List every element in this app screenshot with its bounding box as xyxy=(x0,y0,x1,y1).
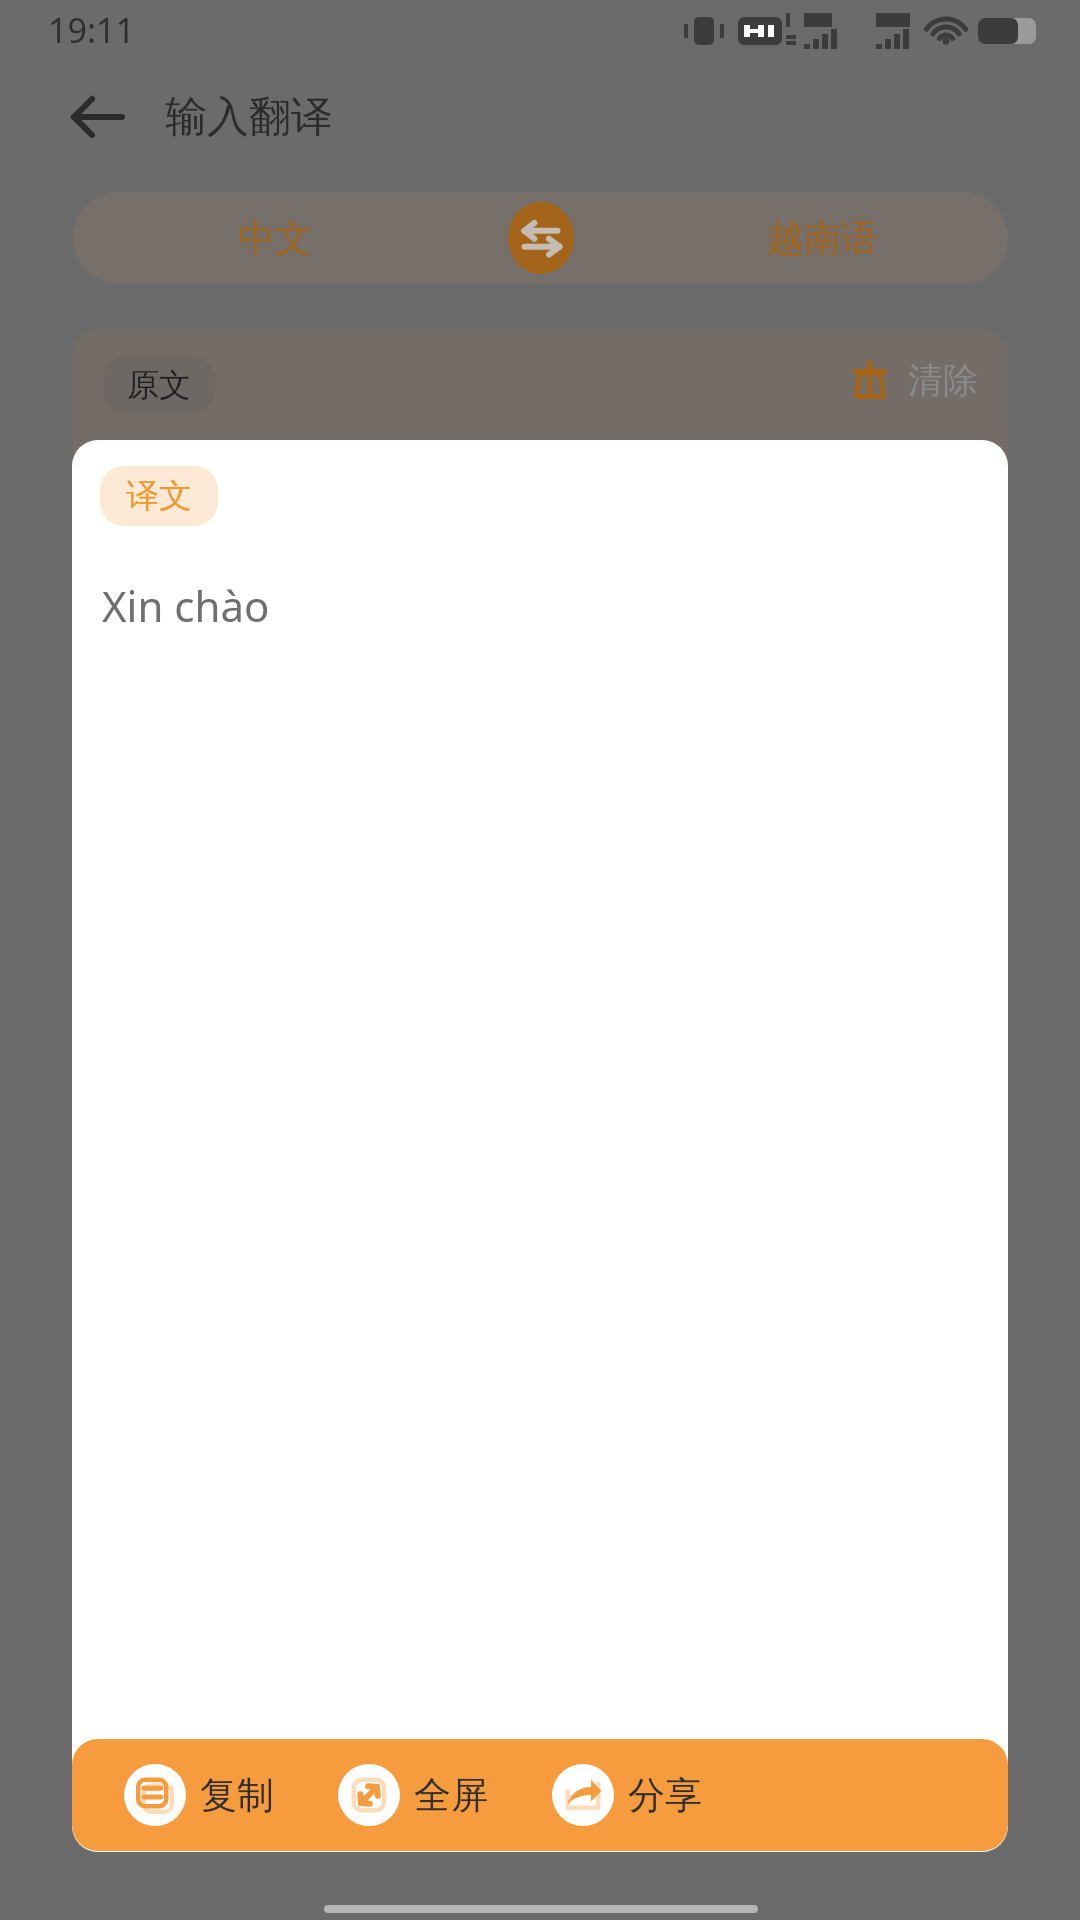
staticText: 中文 xyxy=(238,215,312,262)
staticText: 输入翻译 xyxy=(165,91,333,144)
button[interactable]: 全屏 xyxy=(332,1756,494,1834)
staticText: 分享 xyxy=(628,1772,702,1819)
button[interactable]: Back xyxy=(50,72,144,162)
staticText: 译文 xyxy=(126,475,192,517)
staticText: 全屏 xyxy=(414,1772,488,1819)
button[interactable]: 中文 xyxy=(73,192,1008,284)
staticText: 清除 xyxy=(908,358,978,402)
button[interactable]: 分享 xyxy=(546,1756,708,1834)
staticText: 原文 xyxy=(127,365,191,405)
button[interactable]: 清除 xyxy=(848,358,978,402)
staticText: Xin chào xyxy=(102,577,270,634)
staticText: 19:11 xyxy=(48,7,135,53)
staticText: 复制 xyxy=(200,1772,274,1819)
staticText: 越南语 xyxy=(767,215,878,262)
button[interactable]: 复制 xyxy=(118,1756,280,1834)
button[interactable]: 译文 xyxy=(100,466,218,526)
